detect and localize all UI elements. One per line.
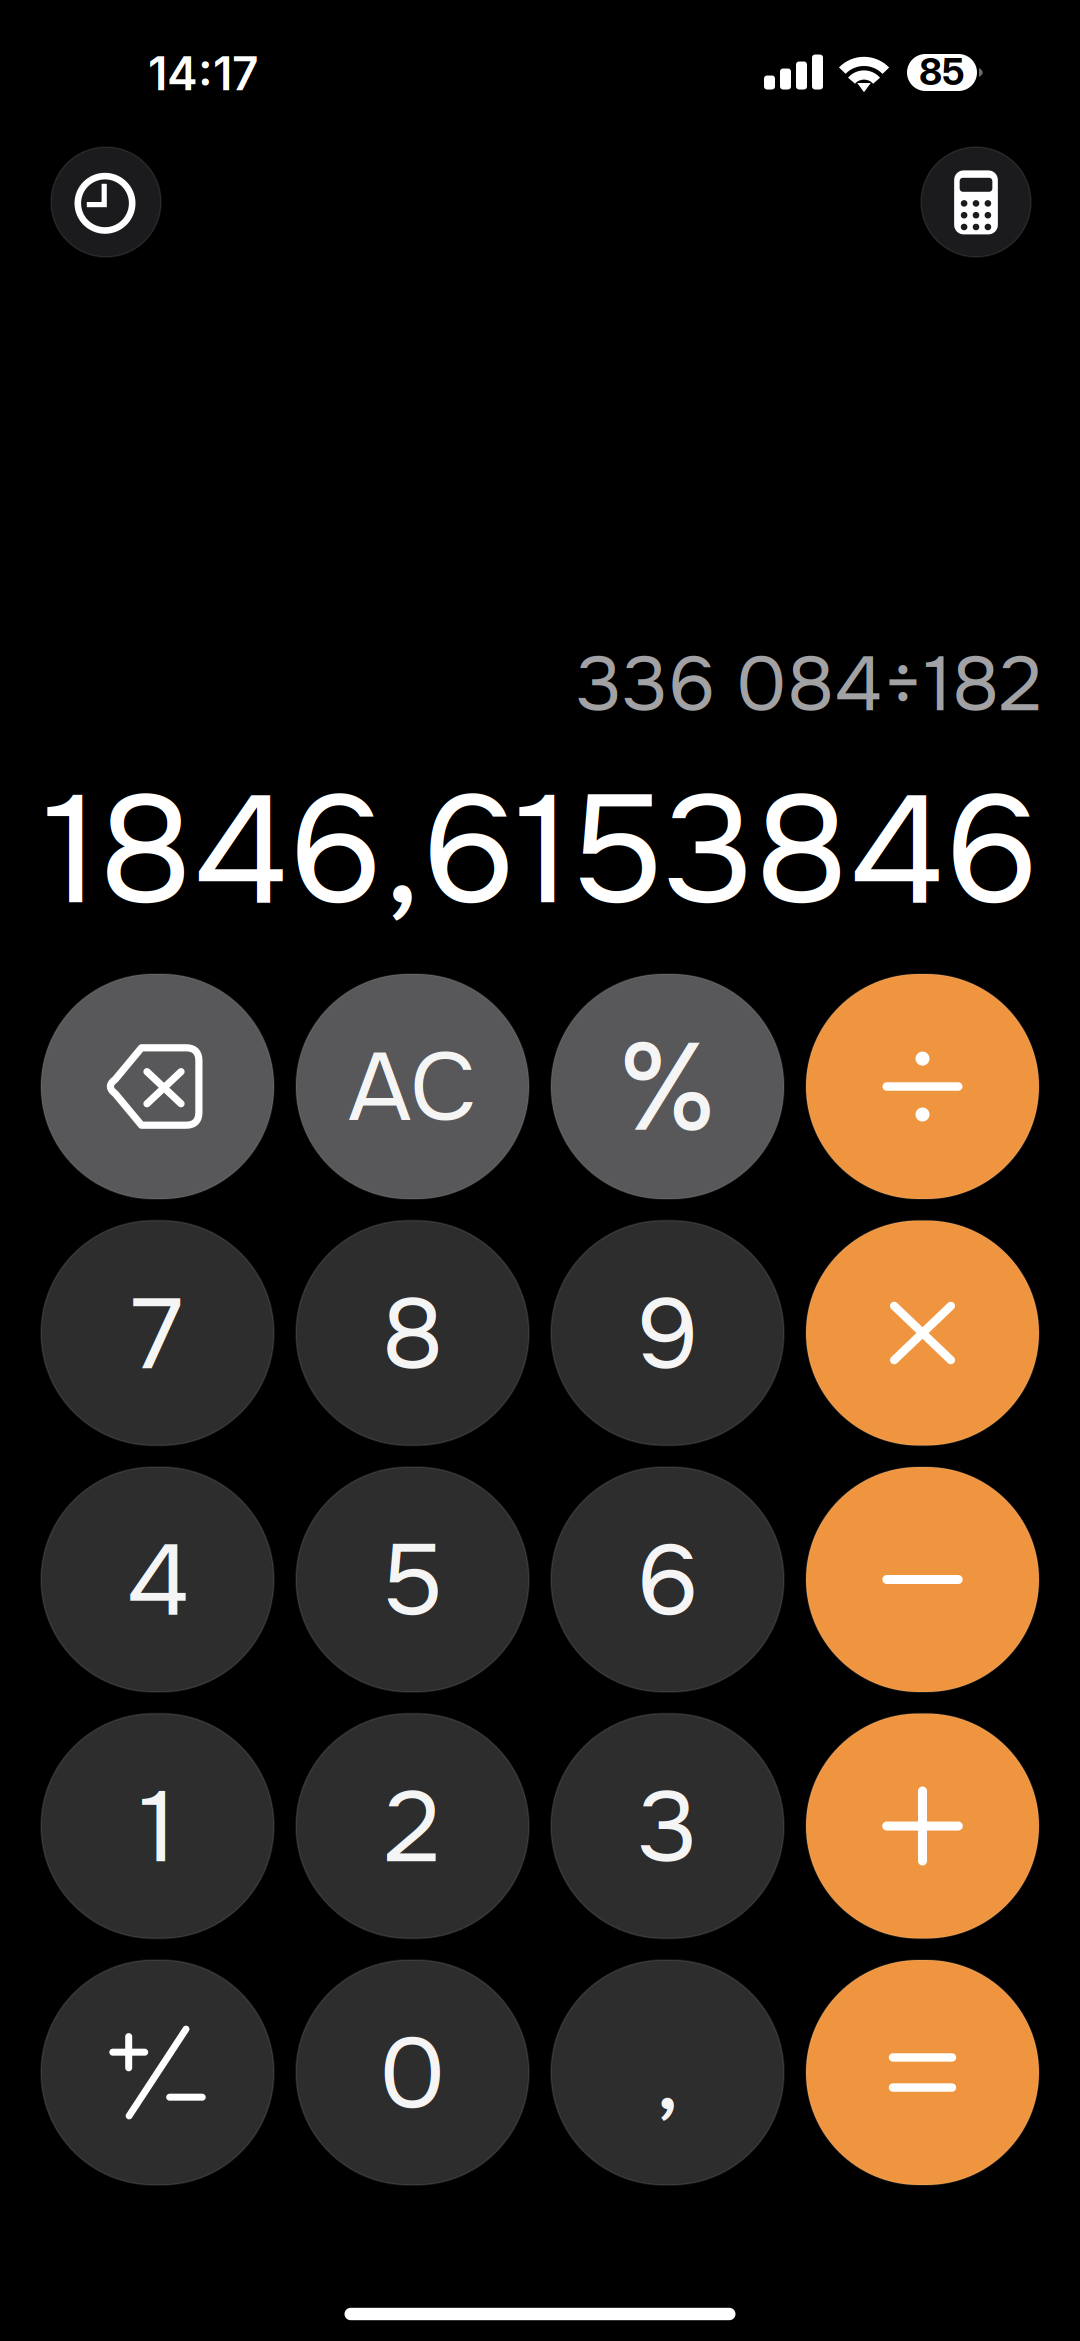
staticText: AC	[348, 1028, 477, 1149]
button[interactable]: 0	[296, 1960, 529, 2185]
button[interactable]: Toggle sign	[41, 1960, 274, 2185]
button[interactable]: 9	[551, 1220, 784, 1445]
button[interactable]: 7	[41, 1220, 274, 1445]
staticText: 0	[379, 2011, 446, 2138]
staticText: 4	[126, 1518, 189, 1645]
staticText: 1	[139, 1764, 175, 1892]
staticText: 14:17	[148, 46, 259, 101]
button[interactable]: Subtract	[806, 1467, 1039, 1692]
button[interactable]: 6	[551, 1467, 784, 1692]
staticText: ,	[654, 2012, 680, 2139]
staticText: 3	[637, 1764, 697, 1892]
staticText: 7	[132, 1271, 183, 1399]
button[interactable]: Add	[806, 1713, 1039, 1938]
button[interactable]: 8	[296, 1220, 529, 1445]
button[interactable]: Backspace	[41, 974, 274, 1199]
staticText: %	[617, 1009, 717, 1167]
button[interactable]: 5	[296, 1467, 529, 1692]
staticText: 8	[381, 1271, 443, 1399]
button[interactable]: ,	[551, 1960, 784, 2185]
button[interactable]: AC	[296, 974, 529, 1199]
button[interactable]: Equals	[806, 1960, 1039, 2185]
staticText: 336 084÷182	[576, 637, 1042, 733]
staticText: 85	[919, 49, 965, 94]
button[interactable]: Divide	[806, 974, 1039, 1199]
staticText: 5	[381, 1518, 443, 1645]
staticText: 1846,6153846	[43, 755, 1038, 948]
button[interactable]: History	[51, 147, 161, 257]
button[interactable]: 1	[41, 1713, 274, 1938]
button[interactable]: Multiply	[806, 1220, 1039, 1445]
staticText: 2	[384, 1764, 441, 1892]
button[interactable]: %	[551, 974, 784, 1199]
button[interactable]: 3	[551, 1713, 784, 1938]
button[interactable]: Switch calculator	[921, 147, 1031, 257]
button[interactable]: 4	[41, 1467, 274, 1692]
staticText: 6	[636, 1518, 698, 1645]
staticText: 9	[636, 1271, 698, 1399]
button[interactable]: 2	[296, 1713, 529, 1938]
